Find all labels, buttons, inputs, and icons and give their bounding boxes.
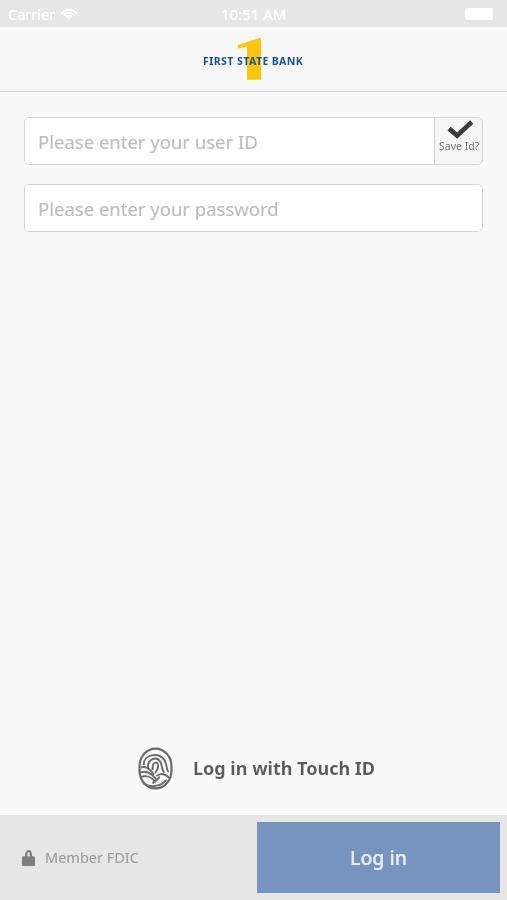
button[interactable]: Save Id (435, 117, 483, 165)
button[interactable]: Log in (257, 822, 500, 893)
staticText: Please enter your user ID (38, 129, 258, 154)
button[interactable]: Member FDIC (22, 847, 139, 867)
staticText: Carrier (8, 4, 56, 24)
staticText: Log in with Touch ID (193, 756, 376, 781)
staticText: FIRST STATE BANK (203, 54, 304, 68)
button[interactable]: Please enter your password (24, 184, 483, 232)
staticText: 10:51 AM (221, 4, 287, 24)
button[interactable]: Please enter your user ID (24, 117, 434, 165)
button[interactable]: Log in with Touch ID (0, 747, 507, 790)
staticText: Save Id? (439, 139, 480, 153)
staticText: Log in (350, 844, 407, 871)
staticText: Please enter your password (38, 196, 279, 221)
staticText: Member FDIC (45, 847, 139, 867)
